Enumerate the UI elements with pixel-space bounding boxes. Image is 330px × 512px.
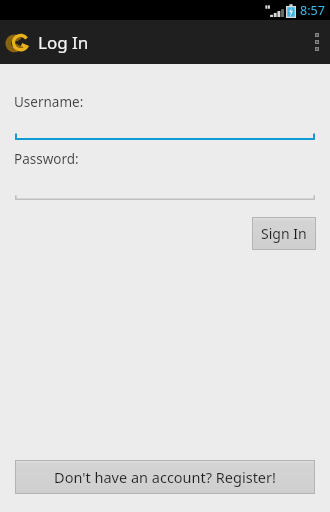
button[interactable]: Don't have an account? Register! bbox=[15, 460, 315, 494]
button[interactable]: More options bbox=[304, 20, 330, 64]
button[interactable]: Username field bbox=[0, 132, 330, 140]
staticText: Don't have an account? Register! bbox=[15, 467, 315, 487]
staticText: 8:57 bbox=[300, 2, 325, 19]
staticText: Sign In bbox=[261, 224, 307, 243]
button[interactable]: Sign In bbox=[252, 217, 316, 250]
staticText: Username: bbox=[14, 93, 84, 111]
staticText: Log In bbox=[38, 31, 89, 54]
staticText: Password: bbox=[14, 150, 79, 168]
button[interactable]: Password field bbox=[0, 192, 330, 200]
